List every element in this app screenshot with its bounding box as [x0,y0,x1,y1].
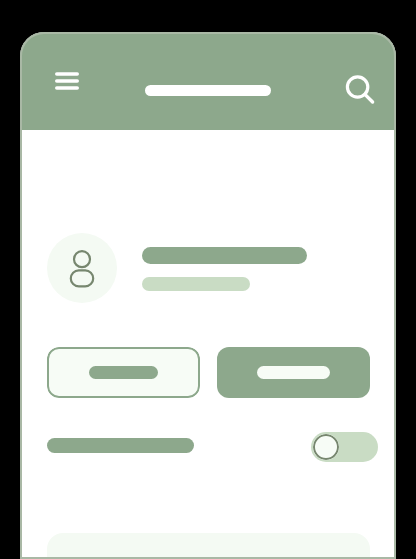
button[interactable]: Profile avatar [47,233,117,303]
button[interactable]: Search [338,68,382,112]
button[interactable]: Menu [47,61,87,101]
button[interactable] [47,347,200,398]
button[interactable] [217,347,370,398]
button[interactable]: Toggle setting [311,432,378,462]
